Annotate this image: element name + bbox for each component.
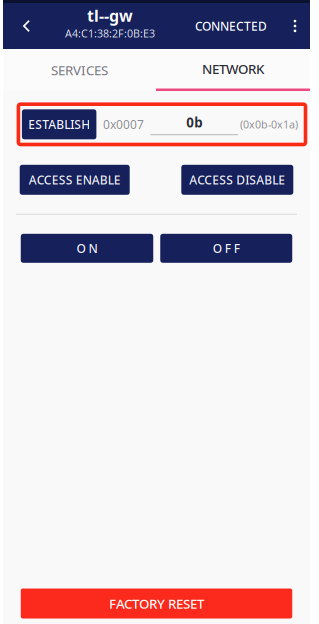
staticText: NETWORK	[202, 60, 264, 78]
staticText: ESTABLISH	[28, 116, 90, 132]
staticText: 0b	[186, 113, 202, 131]
staticText: ACCESS DISABLE	[189, 172, 285, 188]
button[interactable]: NETWORK	[156, 49, 310, 91]
button[interactable]: ESTABLISH	[22, 109, 96, 139]
button[interactable]: Back	[3, 3, 50, 49]
staticText: ACCESS ENABLE	[29, 172, 121, 188]
button[interactable]: SERVICES	[3, 49, 156, 91]
button[interactable]: O F F	[160, 234, 292, 263]
staticText: O N	[76, 240, 97, 256]
staticText: A4:C1:38:2F:0B:E3	[65, 26, 155, 40]
button[interactable]: ACCESS DISABLE	[181, 165, 293, 195]
staticText: SERVICES	[51, 61, 108, 79]
staticText: O F F	[213, 240, 240, 256]
staticText: (0x0b-0x1a)	[240, 117, 298, 131]
button[interactable]: More options	[283, 3, 307, 49]
button[interactable]: CONNECTED	[195, 3, 267, 49]
button[interactable]: FACTORY RESET	[21, 588, 292, 618]
button[interactable]: ACCESS ENABLE	[20, 165, 130, 195]
button[interactable]: O N	[21, 234, 153, 263]
staticText: CONNECTED	[195, 18, 267, 34]
staticText: FACTORY RESET	[109, 595, 204, 612]
staticText: 0x0007	[103, 116, 144, 132]
staticText: tl--gw	[87, 5, 133, 26]
